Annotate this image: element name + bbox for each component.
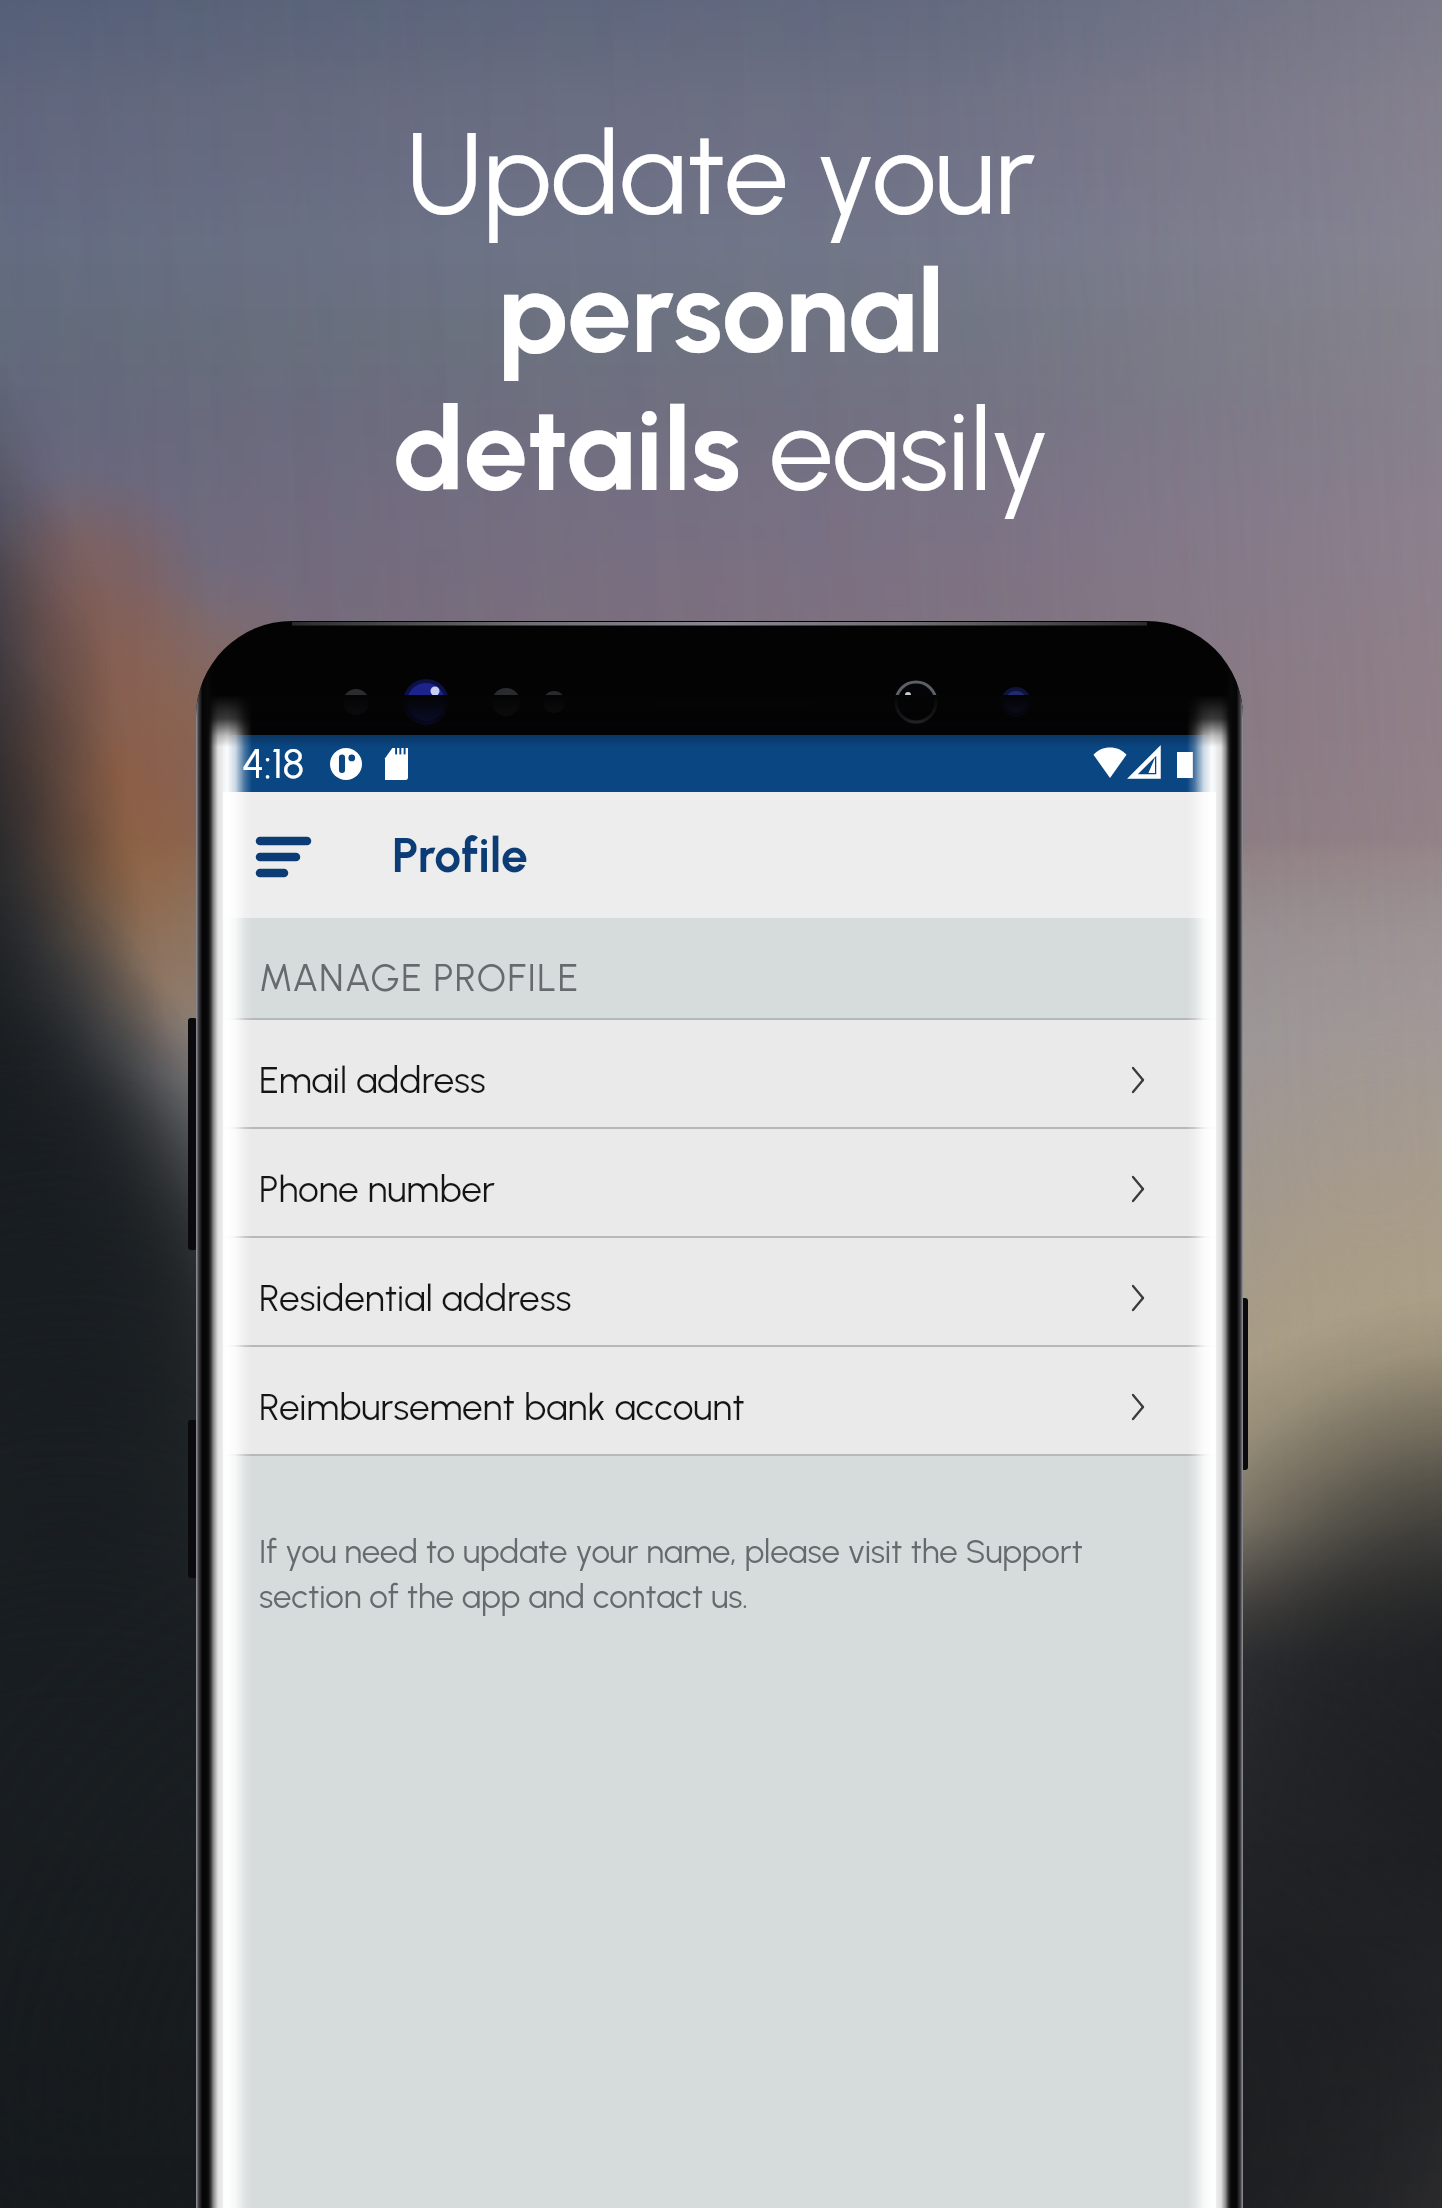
staticText: MANAGE PROFILE [259,955,580,1001]
staticText: 4:18 [242,739,305,788]
button[interactable]: Phone number [223,1129,1216,1236]
button[interactable]: Open navigation menu [237,807,333,903]
staticText: Update your [406,105,1036,243]
staticText: Email address [259,1058,486,1102]
staticText: Residential address [259,1276,572,1320]
staticText: If you need to update your name, please … [259,1532,1156,1616]
staticText: details [393,381,769,519]
button[interactable]: Residential address [223,1238,1216,1345]
staticText: Phone number [259,1167,496,1211]
staticText: personal [497,243,945,381]
staticText: easily [769,381,1050,519]
staticText: Profile [392,826,528,884]
staticText: Reimbursement bank account [259,1385,745,1429]
button[interactable]: Email address [223,1020,1216,1127]
button[interactable]: Reimbursement bank account [223,1347,1216,1454]
